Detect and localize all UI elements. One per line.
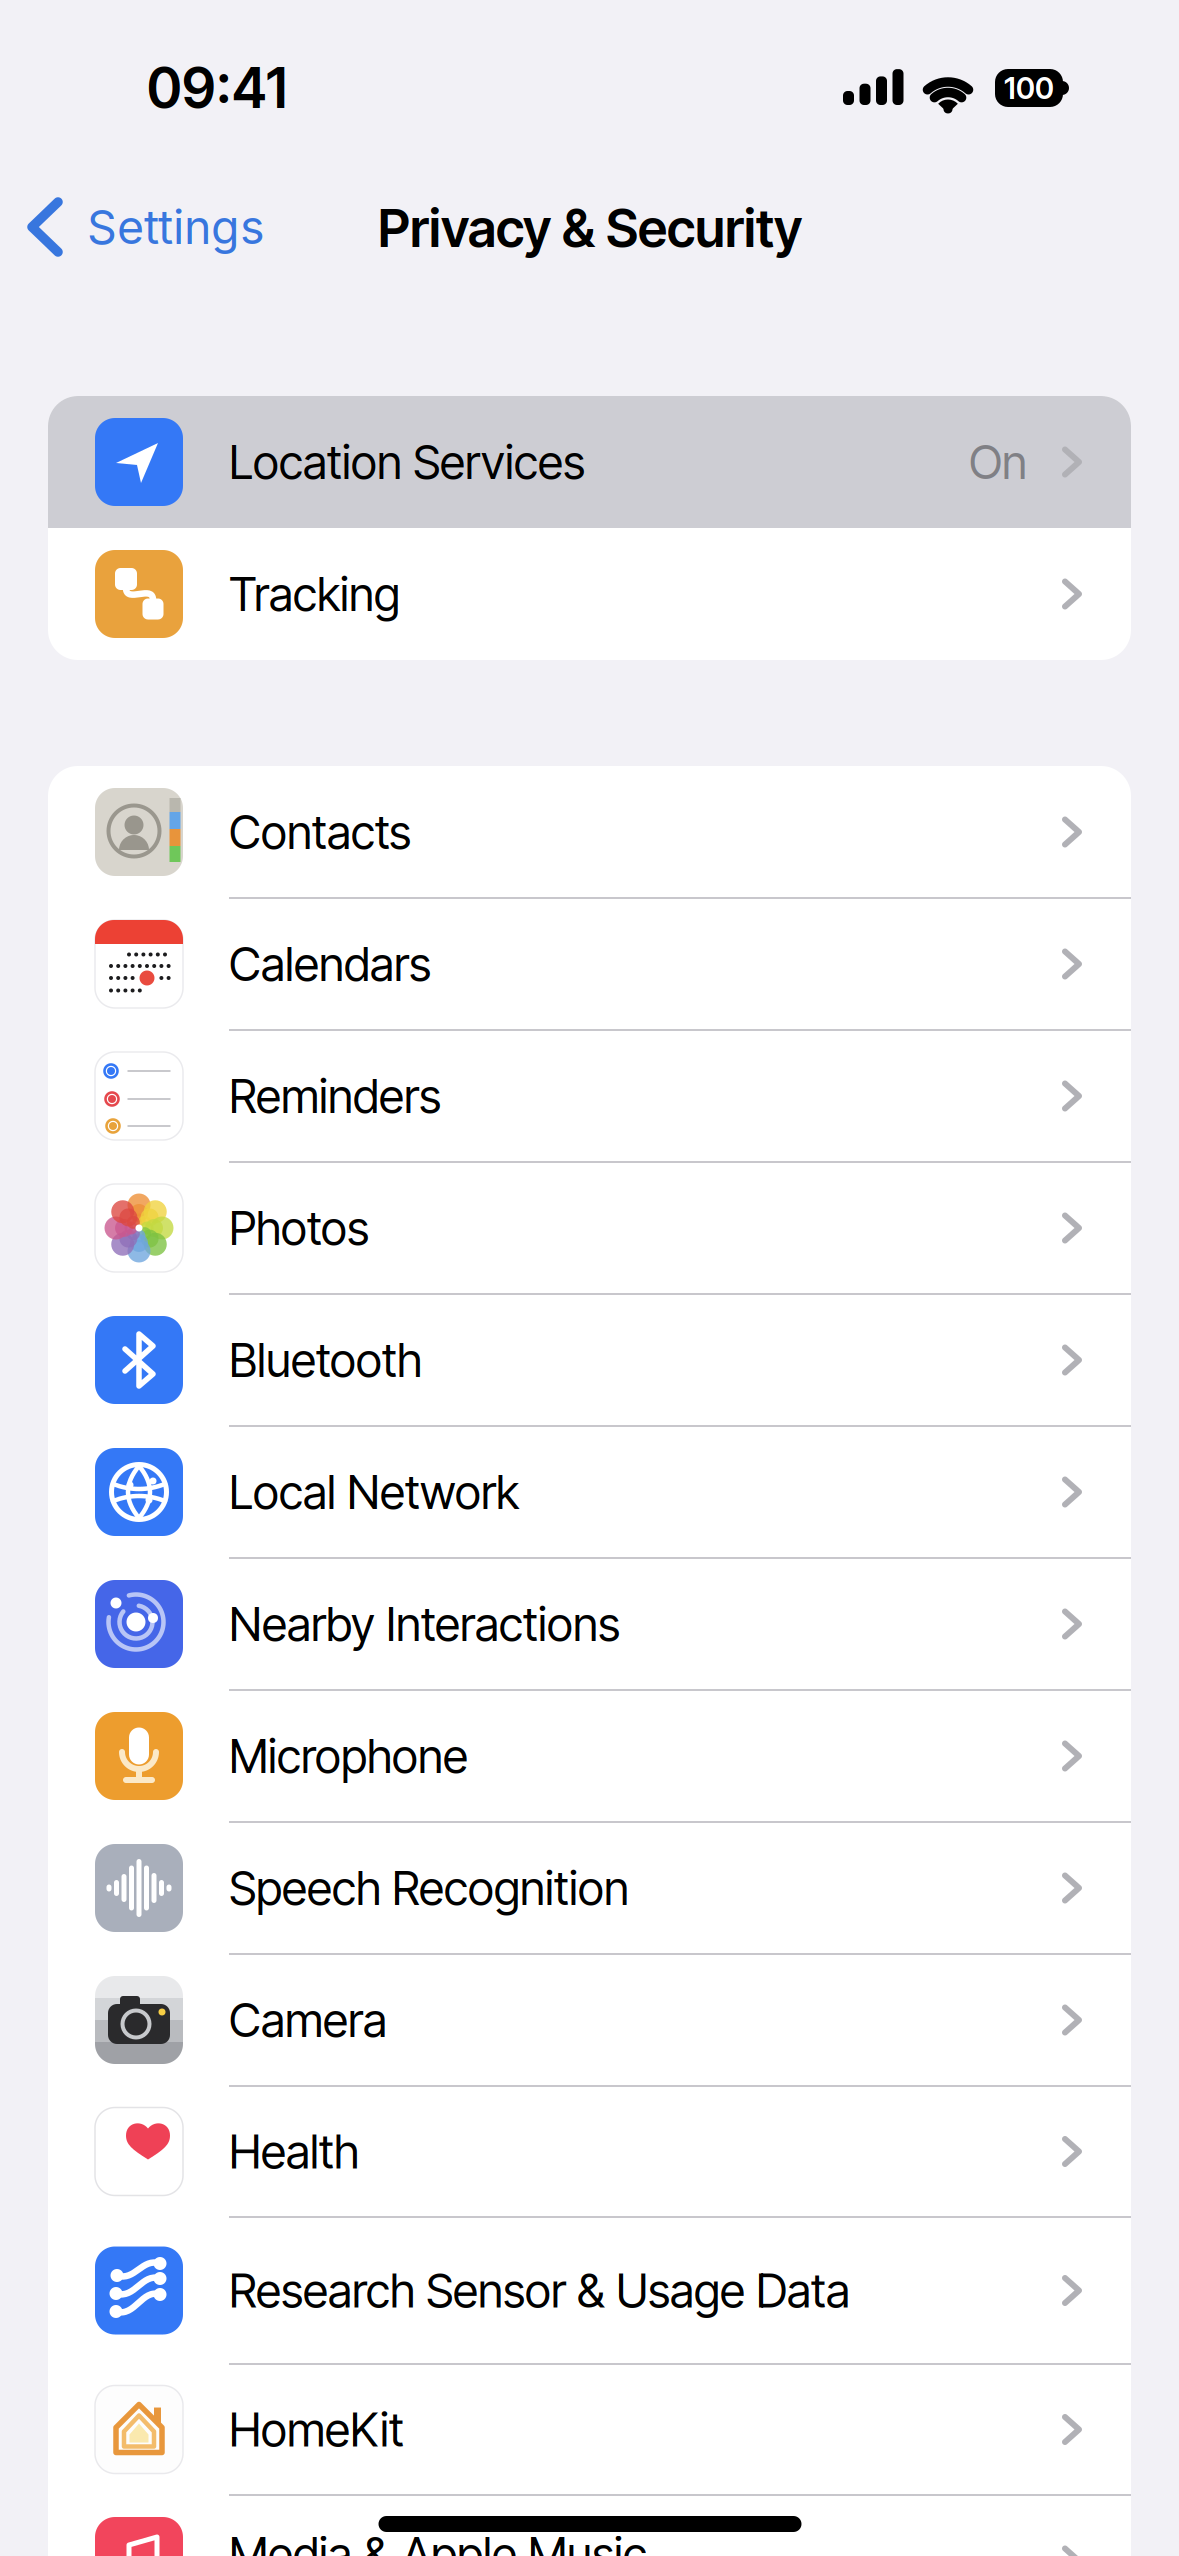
staticText: Tracking: [229, 566, 400, 622]
button[interactable]: Location Services: [48, 396, 1131, 528]
button[interactable]: Local Network: [48, 1426, 1131, 1558]
button[interactable]: Nearby Interactions: [48, 1558, 1131, 1690]
button[interactable]: Settings: [26, 194, 356, 260]
button[interactable]: Contacts: [48, 766, 1131, 898]
staticText: Nearby Interactions: [229, 1596, 620, 1652]
staticText: Media & Apple Music: [229, 2526, 647, 2556]
staticText: Speech Recognition: [229, 1860, 629, 1916]
staticText: Health: [229, 2123, 359, 2180]
staticText: Contacts: [229, 804, 411, 860]
staticText: Settings: [87, 199, 265, 255]
button[interactable]: HomeKit: [48, 2364, 1131, 2495]
staticText: Privacy & Security: [378, 196, 802, 260]
staticText: Calendars: [229, 936, 431, 992]
staticText: 09:41: [147, 55, 287, 121]
staticText: Location Services: [229, 434, 585, 490]
staticText: 100: [1004, 70, 1054, 106]
button[interactable]: Bluetooth: [48, 1294, 1131, 1426]
button[interactable]: Photos: [48, 1162, 1131, 1294]
button[interactable]: Tracking: [48, 528, 1131, 660]
staticText: Reminders: [229, 1068, 441, 1124]
button[interactable]: Reminders: [48, 1030, 1131, 1162]
button[interactable]: Camera: [48, 1954, 1131, 2086]
button[interactable]: Microphone: [48, 1690, 1131, 1822]
staticText: HomeKit: [229, 2401, 404, 2458]
staticText: Microphone: [229, 1728, 468, 1784]
button[interactable]: Health: [48, 2086, 1131, 2217]
staticText: Camera: [229, 1992, 387, 2048]
button[interactable]: Speech Recognition: [48, 1822, 1131, 1954]
staticText: Photos: [229, 1200, 369, 1256]
button[interactable]: Research Sensor & Usage Data: [48, 2217, 1131, 2364]
staticText: Research Sensor & Usage Data: [229, 2262, 850, 2319]
button[interactable]: Calendars: [48, 898, 1131, 1030]
staticText: Bluetooth: [229, 1332, 422, 1388]
button[interactable]: Media & Apple Music: [48, 2495, 1131, 2556]
staticText: On: [969, 434, 1027, 490]
staticText: Local Network: [229, 1464, 519, 1520]
